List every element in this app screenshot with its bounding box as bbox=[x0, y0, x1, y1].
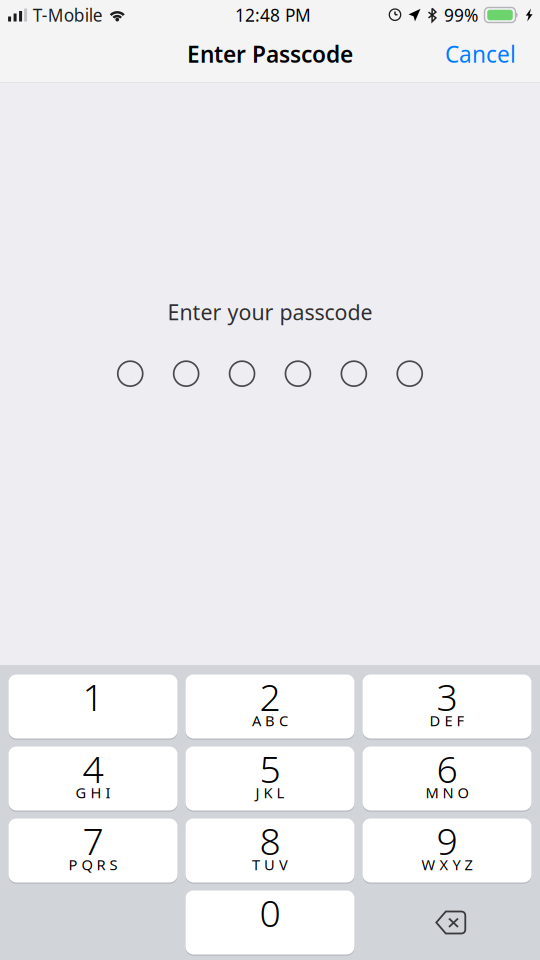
staticText: Enter your passcode bbox=[167, 298, 372, 326]
staticText: 5 bbox=[259, 744, 280, 793]
button[interactable]: 4 bbox=[8, 746, 177, 810]
button[interactable]: Cancel bbox=[445, 41, 540, 71]
staticText: P Q R S bbox=[68, 855, 117, 874]
button[interactable]: 7 bbox=[8, 818, 177, 882]
staticText: 3 bbox=[436, 672, 457, 721]
staticText: T-Mobile bbox=[33, 3, 103, 26]
staticText: M N O bbox=[425, 783, 468, 802]
staticText: 0 bbox=[259, 888, 280, 937]
staticText: 8 bbox=[259, 816, 280, 865]
button[interactable]: 0 bbox=[185, 890, 354, 954]
staticText: 99% bbox=[444, 3, 478, 26]
staticText: T U V bbox=[252, 855, 288, 874]
button[interactable]: 2 bbox=[185, 674, 354, 738]
staticText: W X Y Z bbox=[421, 855, 472, 874]
staticText: 9 bbox=[436, 816, 457, 865]
button[interactable]: 5 bbox=[185, 746, 354, 810]
button[interactable]: 9 bbox=[362, 818, 531, 882]
staticText: 12:48 PM bbox=[235, 3, 311, 26]
staticText: J K L bbox=[255, 783, 284, 802]
staticText: Cancel bbox=[445, 39, 516, 69]
staticText: G H I bbox=[75, 783, 110, 802]
staticText: 7 bbox=[82, 816, 103, 865]
staticText: Enter Passcode bbox=[187, 39, 353, 69]
button[interactable]: 3 bbox=[362, 674, 531, 738]
button[interactable]: 6 bbox=[362, 746, 531, 810]
staticText: D E F bbox=[429, 711, 464, 730]
button[interactable]: 8 bbox=[185, 818, 354, 882]
button[interactable]: Delete bbox=[362, 890, 531, 954]
staticText: 4 bbox=[82, 744, 103, 793]
staticText: A B C bbox=[252, 711, 288, 730]
staticText: 6 bbox=[436, 744, 457, 793]
button[interactable]: 1 bbox=[8, 674, 177, 738]
staticText: 2 bbox=[259, 672, 280, 721]
staticText: 1 bbox=[82, 672, 103, 721]
